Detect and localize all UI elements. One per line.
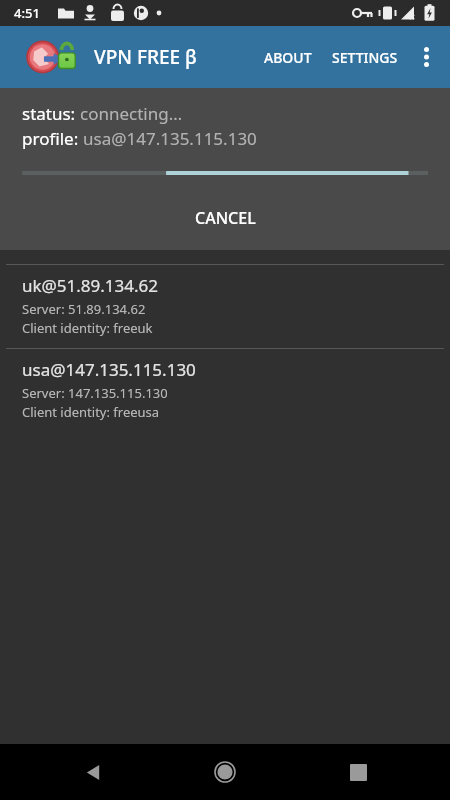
staticText: CANCEL bbox=[195, 207, 256, 229]
button[interactable]: Back bbox=[53, 744, 133, 800]
button[interactable]: CANCEL bbox=[0, 194, 450, 242]
other: VPN Free logo bbox=[26, 40, 82, 74]
staticText: profile: bbox=[22, 127, 83, 150]
staticText: Client identity: freeusa bbox=[22, 403, 160, 421]
staticText: usa@147.135.115.130 bbox=[22, 358, 196, 381]
staticText: Server: 147.135.115.130 bbox=[22, 384, 168, 402]
staticText: Client identity: freeuk bbox=[22, 319, 153, 337]
staticText: ABOUT bbox=[264, 48, 312, 67]
staticText: uk@51.89.134.62 bbox=[22, 274, 159, 297]
button[interactable]: uk@51.89.134.62 bbox=[0, 264, 450, 348]
button[interactable]: usa@147.135.115.130 bbox=[0, 348, 450, 432]
staticText: VPN FREE β bbox=[94, 44, 197, 70]
button[interactable]: ABOUT bbox=[256, 34, 320, 81]
staticText: connecting… bbox=[80, 102, 183, 125]
staticText: 4:51 bbox=[14, 4, 40, 22]
staticText: usa@147.135.115.130 bbox=[83, 127, 257, 150]
staticText: SETTINGS bbox=[332, 48, 398, 67]
button[interactable]: More options bbox=[406, 26, 446, 88]
staticText: Server: 51.89.134.62 bbox=[22, 300, 146, 318]
button[interactable]: SETTINGS bbox=[324, 34, 406, 81]
button[interactable]: Home bbox=[185, 744, 265, 800]
staticText: status: bbox=[22, 102, 80, 125]
button[interactable]: Recent apps bbox=[318, 744, 398, 800]
